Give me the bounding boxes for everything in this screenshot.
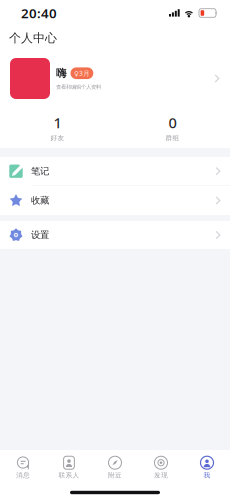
staticText: 联系人 (58, 471, 79, 479)
staticText: 1 (53, 113, 61, 132)
staticText: 收藏 (31, 195, 49, 206)
staticText: 个人中心 (9, 31, 57, 45)
button[interactable]: 联系人 (46, 453, 92, 483)
button[interactable]: 发现 (138, 453, 184, 483)
staticText: 20:40 (21, 4, 57, 22)
staticText: 我 (203, 471, 210, 479)
staticText: 好友 (50, 134, 64, 142)
staticText: 消息 (16, 471, 30, 479)
button[interactable]: 消息 (0, 453, 46, 483)
staticText: 附近 (108, 471, 122, 479)
staticText: 0 (168, 113, 176, 132)
staticText: 笔记 (31, 165, 49, 177)
button[interactable]: 1 (0, 111, 115, 144)
button[interactable]: 设置 (0, 221, 230, 249)
staticText: 群组 (165, 134, 179, 142)
staticText: ♀3月 (74, 69, 90, 78)
staticText: 发现 (154, 471, 168, 479)
button[interactable]: 嗨 (0, 50, 230, 107)
button[interactable]: 收藏 (0, 186, 230, 215)
staticText: 查看和编辑个人资料 (56, 84, 101, 90)
button[interactable]: 笔记 (0, 157, 230, 186)
staticText: 设置 (31, 229, 49, 241)
button[interactable]: 附近 (92, 453, 138, 483)
button[interactable]: 我 (184, 453, 230, 483)
staticText: 嗨 (56, 67, 67, 80)
button[interactable]: 0 (115, 111, 230, 144)
